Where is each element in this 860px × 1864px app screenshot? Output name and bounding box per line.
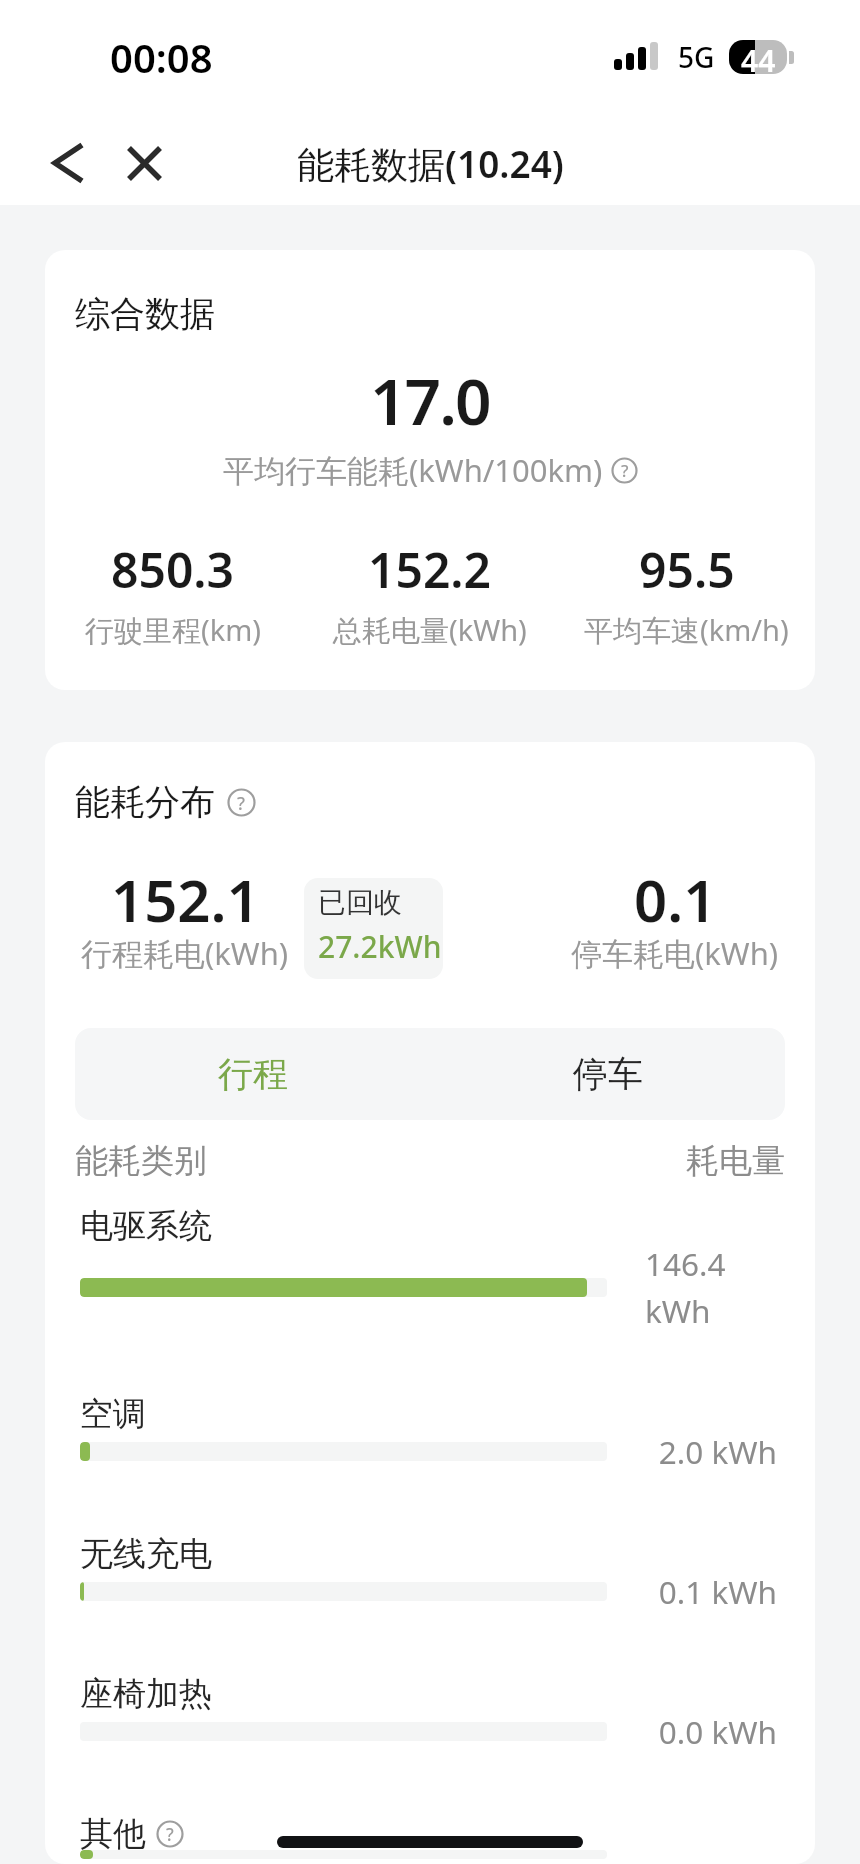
staticText: ? [166,1822,174,1846]
staticText: 行程耗电(kWh) [81,932,289,974]
staticText: 5G [678,38,715,76]
staticText: 总耗电量(kWh) [333,610,527,650]
staticText: 能耗类别 [75,1140,207,1182]
staticText: 146.4 kWh [645,1242,777,1332]
staticText: 空调 [80,1393,146,1435]
staticText: 平均车速(km/h) [584,610,789,650]
staticText: 152.2 [368,537,492,602]
button[interactable] [48,143,88,183]
staticText: 850.3 [111,537,235,602]
staticText: 无线充电 [80,1533,212,1575]
staticText: 17.0 [370,357,490,444]
staticText: 0.1 kWh [645,1570,777,1613]
staticText: 其他 [80,1813,146,1855]
staticText: 平均行车能耗(kWh/100km) [223,449,603,491]
staticText: 0.0 kWh [645,1710,777,1753]
staticText: 152.1 [111,860,260,939]
staticText: 行程 [218,1052,288,1096]
staticText: 停车耗电(kWh) [571,932,779,974]
button[interactable]: 停车 [430,1028,785,1120]
staticText: 停车 [573,1052,643,1096]
staticText: 综合数据 [75,292,215,336]
staticText: 0.1 [634,860,717,939]
staticText: 电驱系统 [80,1205,212,1247]
button[interactable] [124,143,164,183]
staticText: 44 [741,40,776,74]
staticText: 能耗数据(10.24) [297,138,564,189]
staticText: ? [621,459,629,482]
staticText: 行驶里程(km) [85,610,262,650]
staticText: 27.2kWh [318,926,442,967]
staticText: ? [237,791,246,815]
button[interactable]: 行程 [75,1028,430,1120]
staticText: 能耗分布 [75,780,215,824]
staticText: 95.5 [639,537,735,602]
staticText: 耗电量 [686,1140,785,1182]
staticText: 2.0 kWh [645,1430,777,1473]
staticText: 座椅加热 [80,1673,212,1715]
staticText: 已回收 [318,885,402,920]
staticText: 00:08 [110,30,213,84]
